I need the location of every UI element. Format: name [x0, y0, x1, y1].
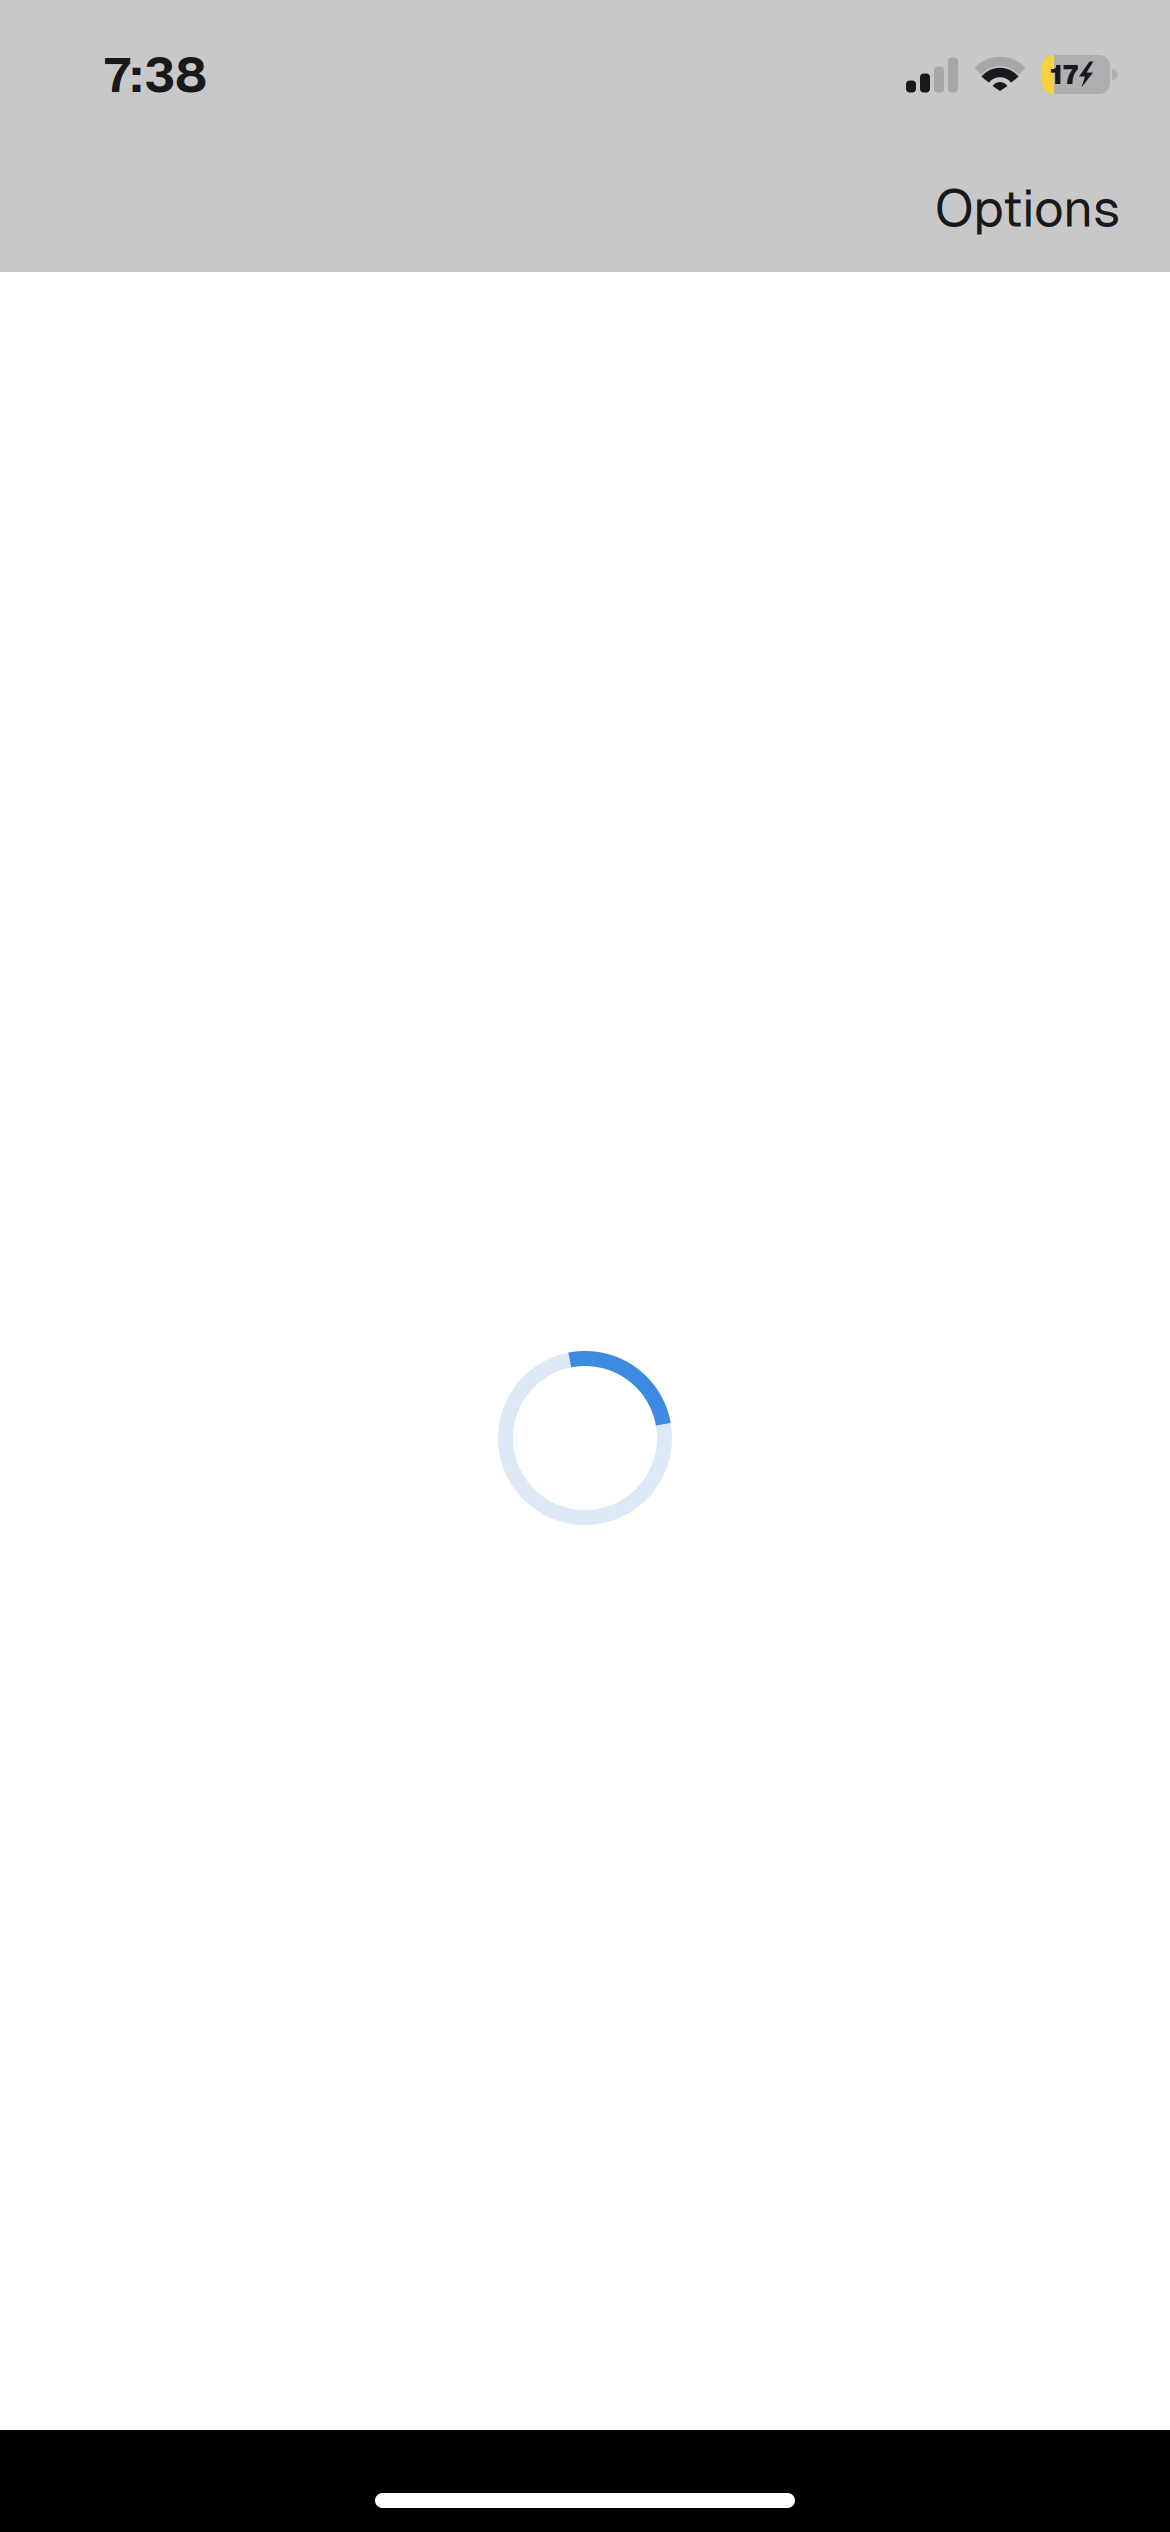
staticText: 7:38 — [104, 44, 207, 106]
staticText: Options — [935, 174, 1120, 242]
button[interactable]: Options — [927, 179, 1128, 237]
staticText: 17 — [1050, 57, 1078, 92]
